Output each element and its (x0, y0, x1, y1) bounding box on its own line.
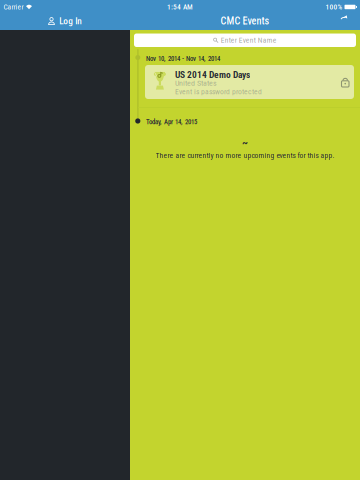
staticText: 100% (325, 3, 342, 11)
button[interactable]: US 2014 Demo Days (145, 65, 354, 99)
staticText: Enter Event Name (221, 36, 277, 45)
staticText: ~ (242, 136, 248, 148)
staticText: Event is password protected (175, 87, 262, 96)
staticText: US 2014 Demo Days (175, 69, 250, 80)
staticText: There are currently no more upcoming eve… (155, 151, 334, 160)
button[interactable]: Log In (0, 12, 130, 30)
button[interactable]: Enter Event Name (134, 33, 356, 47)
staticText: Nov 10, 2014 - Nov 14, 2014 (146, 55, 220, 63)
staticText: 1:54 AM (167, 3, 193, 11)
staticText: United States (175, 78, 217, 88)
staticText: Log In (59, 15, 82, 26)
staticText: Carrier (3, 3, 23, 11)
button[interactable]: Refresh (333, 11, 355, 29)
staticText: CMC Events (220, 15, 269, 27)
staticText: Today, Apr 14, 2015 (146, 118, 197, 126)
